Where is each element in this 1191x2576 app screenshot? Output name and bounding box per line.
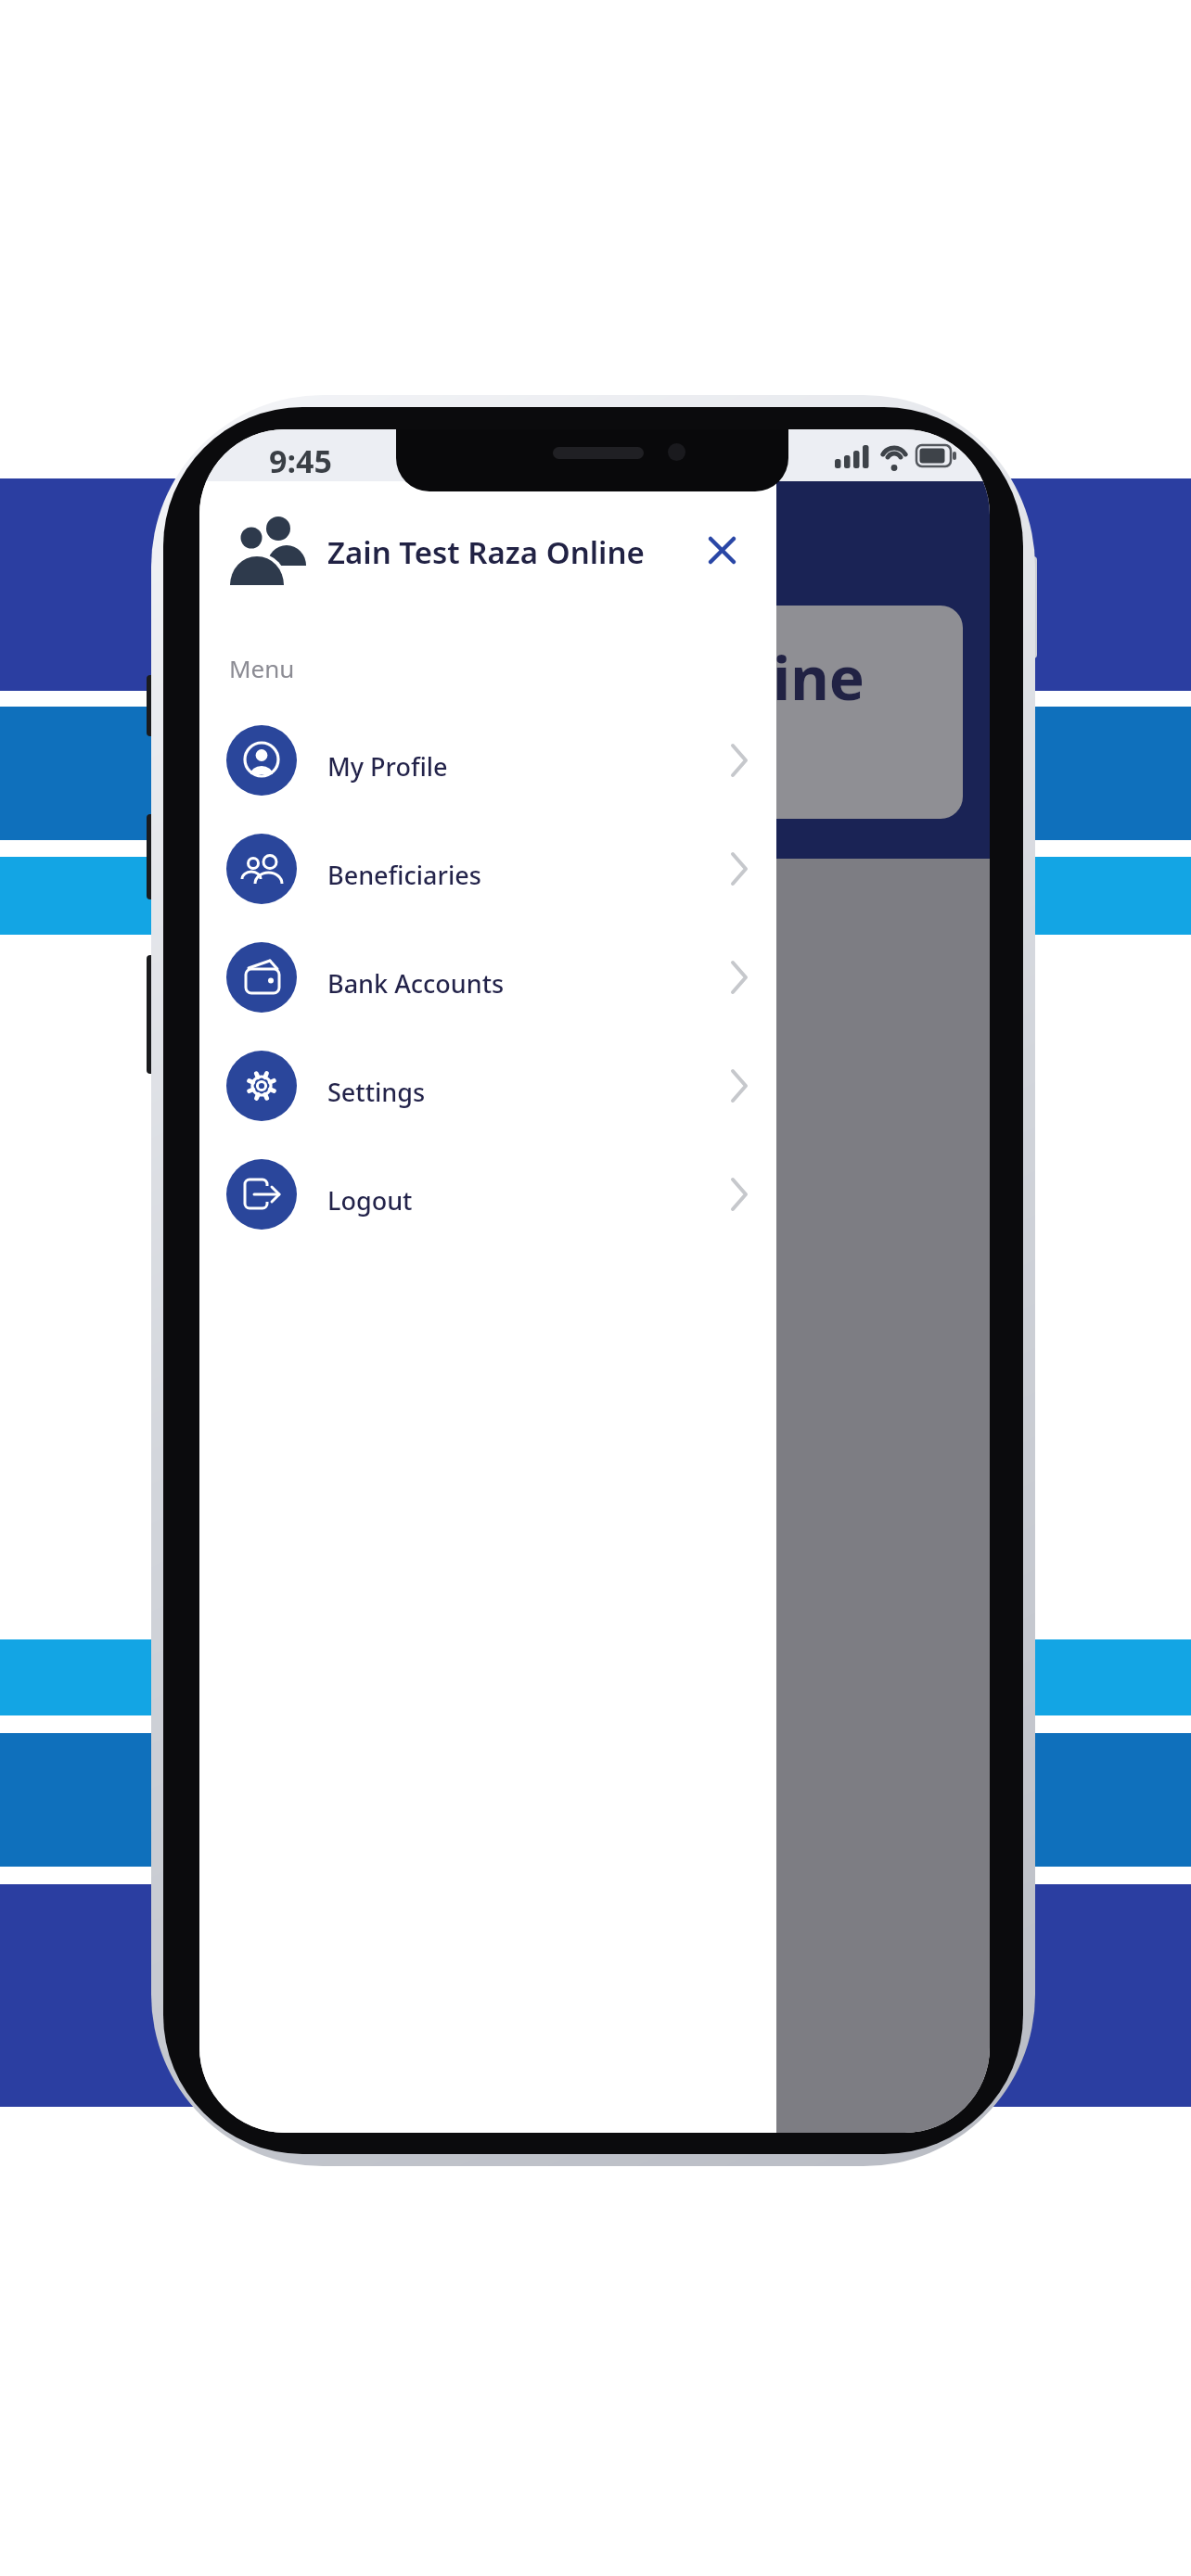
staticText: Zain Test Raza Online <box>327 531 645 573</box>
staticText: Settings <box>327 1075 426 1109</box>
staticText: My Profile <box>327 749 448 784</box>
button[interactable] <box>700 528 745 572</box>
button[interactable]: Beneficiaries <box>214 828 762 910</box>
button[interactable]: Logout <box>214 1154 762 1235</box>
button[interactable]: My Profile <box>214 720 762 801</box>
staticText: ine <box>773 637 864 718</box>
button[interactable]: Bank Accounts <box>214 937 762 1018</box>
staticText: 9:45 <box>269 440 332 482</box>
button[interactable]: Settings <box>214 1045 762 1127</box>
staticText: Menu <box>229 652 295 684</box>
staticText: Logout <box>327 1183 413 1218</box>
staticText: Bank Accounts <box>327 966 505 1001</box>
staticText: Beneficiaries <box>327 858 481 892</box>
